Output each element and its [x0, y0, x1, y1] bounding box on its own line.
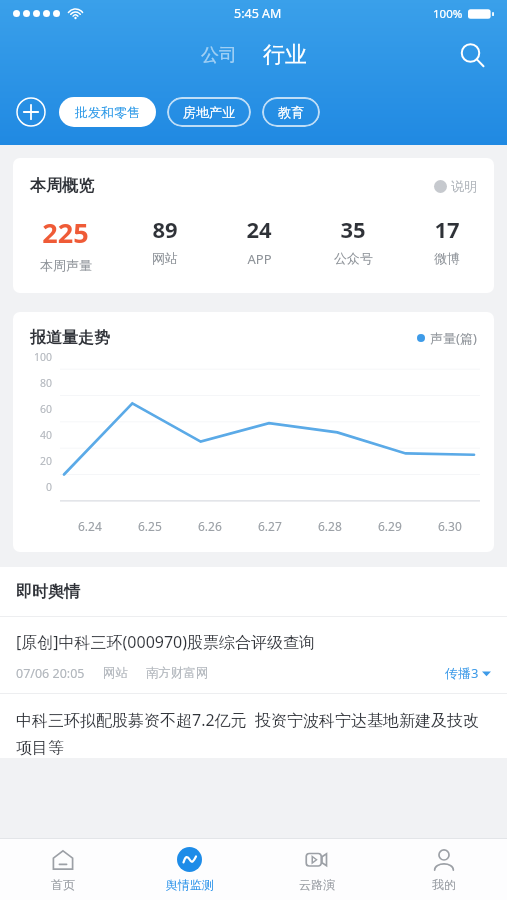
- button[interactable]: 中科三环拟配股募资不超7.2亿元 投资宁波科宁达基地新建及技改项目等: [0, 694, 507, 758]
- button[interactable]: 首页: [0, 839, 126, 900]
- button[interactable]: 声量(篇): [417, 329, 477, 347]
- staticText: 我的: [432, 877, 456, 892]
- button[interactable]: 批发和零售: [59, 97, 156, 127]
- staticText: 公司: [201, 44, 237, 67]
- staticText: 南方财富网: [146, 665, 209, 681]
- staticText: 说明: [451, 178, 477, 194]
- button[interactable]: Search: [454, 37, 490, 73]
- staticText: 报道量走势: [30, 328, 110, 348]
- staticText: 即时舆情: [16, 582, 80, 602]
- staticText: 100: [34, 350, 53, 364]
- staticText: 0: [46, 480, 53, 494]
- staticText: 批发和零售: [75, 104, 140, 120]
- button[interactable]: 房地产业: [167, 97, 251, 127]
- button[interactable]: 舆情监测: [126, 839, 253, 900]
- staticText: 6.26: [198, 518, 222, 534]
- button[interactable]: 我的: [380, 839, 507, 900]
- button[interactable]: 传播3: [445, 664, 491, 682]
- staticText: 声量(篇): [430, 329, 477, 347]
- staticText: 公众号: [334, 250, 373, 266]
- button[interactable]: 35: [306, 214, 400, 266]
- staticText: 5:45 AM: [234, 5, 282, 22]
- staticText: 07/06 20:05: [16, 665, 85, 682]
- staticText: 中科三环拟配股募资不超7.2亿元 投资宁波科宁达基地新建及技改项目等: [16, 709, 494, 758]
- staticText: 本周概览: [30, 176, 94, 196]
- button[interactable]: [原创]中科三环(000970)股票综合评级查询: [0, 617, 507, 693]
- staticText: 6.25: [138, 518, 162, 534]
- staticText: 6.29: [378, 518, 402, 534]
- staticText: 35: [340, 214, 366, 244]
- staticText: 225: [42, 214, 89, 251]
- staticText: 教育: [278, 104, 304, 120]
- staticText: 网站: [152, 250, 178, 266]
- button[interactable]: Add industry: [16, 97, 46, 127]
- staticText: 20: [40, 454, 53, 468]
- staticText: 云路演: [299, 877, 335, 892]
- staticText: 80: [40, 376, 53, 390]
- staticText: 17: [434, 214, 460, 244]
- staticText: 本周声量: [40, 257, 92, 273]
- button[interactable]: 24: [212, 214, 306, 268]
- staticText: 89: [152, 214, 178, 244]
- staticText: 40: [40, 428, 53, 442]
- button[interactable]: 89: [118, 214, 212, 266]
- staticText: 6.30: [438, 518, 462, 534]
- staticText: APP: [247, 250, 272, 268]
- staticText: 网站: [103, 665, 128, 681]
- staticText: 100%: [433, 6, 463, 22]
- button[interactable]: 公司: [194, 39, 244, 72]
- staticText: 房地产业: [183, 104, 235, 120]
- staticText: 24: [246, 214, 272, 244]
- staticText: 行业: [263, 41, 307, 69]
- staticText: 6.28: [318, 518, 342, 534]
- staticText: 微博: [434, 250, 460, 266]
- staticText: 首页: [51, 877, 75, 892]
- button[interactable]: 云路演: [253, 839, 380, 900]
- staticText: 舆情监测: [166, 877, 214, 892]
- staticText: 6.27: [258, 518, 282, 534]
- button[interactable]: 说明: [430, 174, 481, 198]
- staticText: 60: [40, 402, 53, 416]
- button[interactable]: 教育: [262, 97, 320, 127]
- button[interactable]: 17: [400, 214, 494, 266]
- button[interactable]: 225: [13, 214, 118, 273]
- staticText: 传播3: [445, 664, 479, 682]
- staticText: 6.24: [78, 518, 102, 534]
- button[interactable]: 行业: [256, 36, 314, 74]
- staticText: [原创]中科三环(000970)股票综合评级查询: [16, 631, 316, 653]
